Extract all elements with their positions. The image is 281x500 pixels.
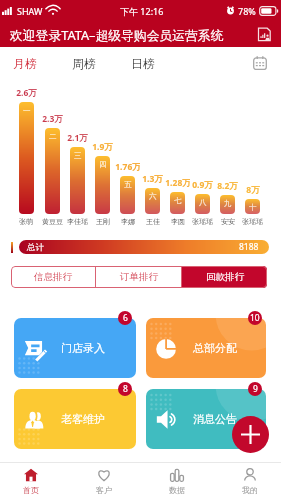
staticText: 下午 12:16 — [120, 5, 164, 17]
staticText: 周榜 — [72, 56, 96, 71]
button[interactable]: 周榜 — [72, 56, 96, 71]
button[interactable]: 首页 — [6, 463, 56, 500]
staticText: 首页 — [23, 485, 39, 495]
button[interactable]: 选择日期 — [251, 54, 269, 72]
staticText: 李佳瑶 — [67, 217, 88, 226]
staticText: 张瑶瑶 — [192, 217, 213, 226]
button[interactable]: 日榜 — [131, 56, 155, 71]
staticText: 9 — [253, 383, 258, 395]
staticText: 月榜 — [13, 56, 37, 71]
button[interactable]: 门店录入 — [14, 318, 136, 378]
staticText: 王佳 — [146, 217, 160, 226]
staticText: 回款排行 — [206, 271, 244, 283]
staticText: 8 — [123, 383, 128, 395]
staticText: 八 — [199, 198, 207, 207]
button[interactable]: 总部分配 — [146, 318, 266, 378]
staticText: 消息公告 — [193, 412, 237, 426]
button[interactable]: 数据报表 — [254, 24, 274, 44]
staticText: 王刚 — [96, 217, 110, 226]
staticText: 1.76万 — [115, 161, 140, 173]
staticText: 信息排行 — [34, 271, 72, 283]
staticText: 总计 — [27, 242, 44, 253]
staticText: 张瑶瑶 — [242, 217, 263, 226]
staticText: 2.1万 — [67, 132, 88, 144]
button[interactable]: 我的 — [225, 463, 275, 500]
staticText: 张萌 — [19, 217, 33, 226]
staticText: 李娜 — [121, 217, 135, 226]
staticText: 10 — [250, 312, 260, 324]
staticText: 1.28万 — [165, 177, 190, 189]
staticText: 2.6万 — [16, 87, 37, 99]
staticText: 二 — [49, 132, 57, 141]
staticText: 我的 — [242, 485, 258, 495]
button[interactable]: 添加 — [232, 416, 269, 453]
staticText: 黄豆豆 — [42, 217, 63, 226]
staticText: 四 — [99, 160, 107, 169]
button[interactable]: 回款排行 — [182, 266, 267, 288]
staticText: 订单排行 — [120, 271, 158, 283]
staticText: 五 — [124, 180, 132, 189]
staticText: 七 — [174, 196, 182, 205]
staticText: 十 — [249, 203, 257, 212]
staticText: 一 — [23, 106, 31, 115]
staticText: 6 — [123, 312, 128, 324]
button[interactable]: 月榜 — [13, 56, 37, 71]
staticText: 1.9万 — [92, 141, 113, 153]
staticText: 日榜 — [131, 56, 155, 71]
staticText: 8.2万 — [217, 180, 238, 192]
staticText: 客户 — [96, 485, 112, 495]
staticText: 1.3万 — [142, 173, 163, 185]
staticText: 门店录入 — [61, 341, 105, 355]
staticText: 2.3万 — [42, 113, 63, 125]
button[interactable]: 消息公告 — [146, 389, 266, 449]
button[interactable]: 老客维护 — [14, 389, 136, 449]
staticText: 欢迎登录TATA–超级导购会员运营系统 — [10, 26, 224, 43]
staticText: 78% — [238, 5, 256, 17]
staticText: 总部分配 — [193, 341, 237, 355]
staticText: 数据 — [169, 485, 185, 495]
button[interactable]: 数据 — [152, 463, 202, 500]
staticText: 8188 — [239, 241, 259, 253]
button[interactable]: 客户 — [79, 463, 129, 500]
staticText: 九 — [224, 199, 232, 208]
staticText: 安安 — [221, 217, 235, 226]
button[interactable]: 订单排行 — [96, 266, 181, 288]
staticText: 三 — [74, 151, 82, 160]
staticText: 8万 — [246, 184, 260, 196]
button[interactable]: 信息排行 — [11, 266, 95, 288]
staticText: 六 — [149, 192, 157, 201]
staticText: 李圆 — [171, 217, 185, 226]
staticText: 0.9万 — [192, 179, 213, 191]
staticText: SHAW — [17, 5, 43, 17]
staticText: 老客维护 — [61, 412, 105, 426]
